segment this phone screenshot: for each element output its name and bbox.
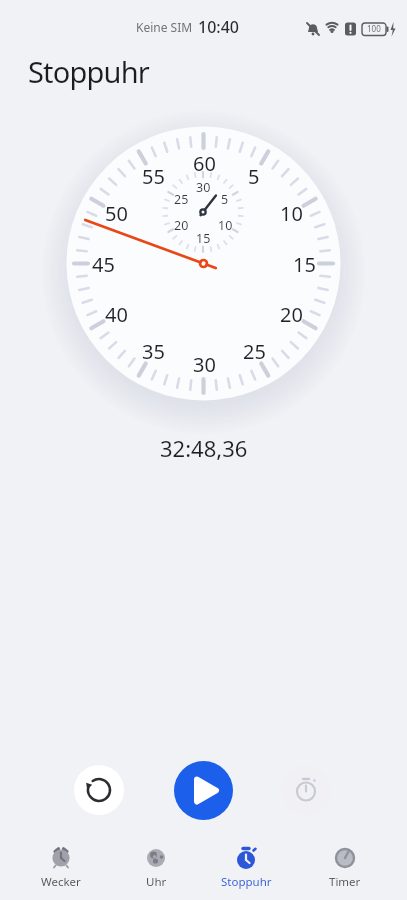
- staticText: 45: [92, 251, 115, 278]
- staticText: 30: [196, 179, 211, 196]
- staticText: 25: [174, 191, 189, 208]
- staticText: 30: [193, 351, 216, 378]
- staticText: Timer: [329, 874, 361, 890]
- staticText: 5: [221, 191, 229, 208]
- button[interactable]: Timer: [301, 840, 389, 898]
- staticText: 35: [142, 338, 165, 365]
- staticText: 10:40: [198, 16, 239, 38]
- button[interactable]: Uhr: [112, 840, 200, 898]
- button[interactable]: [281, 765, 331, 815]
- staticText: Stoppuhr: [28, 52, 150, 91]
- staticText: 10: [218, 217, 233, 234]
- staticText: 32:48,36: [160, 433, 248, 463]
- staticText: Stoppuhr: [221, 874, 272, 890]
- staticText: Keine SIM: [136, 19, 193, 35]
- staticText: Uhr: [146, 874, 167, 890]
- button[interactable]: [174, 761, 233, 820]
- button[interactable]: Stoppuhr: [202, 840, 290, 898]
- staticText: Wecker: [41, 874, 81, 890]
- staticText: 10: [280, 200, 303, 227]
- staticText: 55: [142, 163, 165, 190]
- staticText: 40: [105, 301, 128, 328]
- staticText: 20: [280, 301, 303, 328]
- staticText: 20: [174, 217, 189, 234]
- staticText: 25: [243, 338, 266, 365]
- button[interactable]: Wecker: [17, 840, 105, 898]
- staticText: 50: [105, 200, 128, 227]
- staticText: 5: [248, 163, 260, 190]
- staticText: 15: [293, 251, 316, 278]
- staticText: 100: [367, 23, 381, 34]
- staticText: 15: [196, 230, 211, 247]
- button[interactable]: [74, 765, 124, 815]
- staticText: 60: [193, 150, 216, 177]
